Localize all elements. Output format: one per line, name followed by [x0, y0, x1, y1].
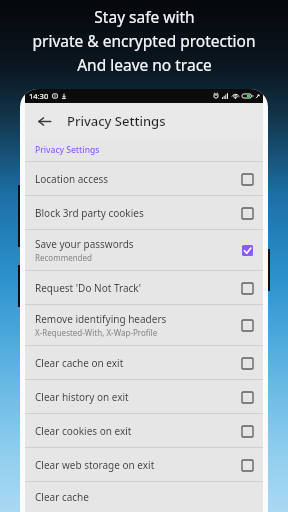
- staticText: 14:30: [29, 91, 49, 101]
- staticText: Privacy Settings: [35, 144, 100, 156]
- button[interactable]: Clear web storage on exit: [25, 448, 263, 481]
- button[interactable]: Unchecked: [240, 206, 254, 220]
- button[interactable]: Save your passwords: [25, 230, 263, 270]
- staticText: Remove identifying headers: [35, 312, 167, 326]
- button[interactable]: Unchecked: [240, 281, 254, 295]
- staticText: Save your passwords: [35, 237, 134, 251]
- staticText: private & encrypted protection: [32, 30, 256, 51]
- staticText: Clear web storage on exit: [35, 458, 155, 472]
- staticText: Clear history on exit: [35, 390, 129, 404]
- button[interactable]: Clear cache: [25, 482, 263, 512]
- button[interactable]: Unchecked: [240, 390, 254, 404]
- button[interactable]: Block 3rd party cookies: [25, 196, 263, 229]
- button[interactable]: Unchecked: [240, 356, 254, 370]
- staticText: Block 3rd party cookies: [35, 206, 144, 220]
- button[interactable]: Remove identifying headers: [25, 305, 263, 345]
- staticText: Request 'Do Not Track': [35, 281, 141, 295]
- button[interactable]: Unchecked: [240, 424, 254, 438]
- staticText: X-Requested-With, X-Wap-Profile: [35, 327, 158, 338]
- button[interactable]: Checked: [240, 243, 254, 257]
- button[interactable]: Unchecked: [240, 318, 254, 332]
- button[interactable]: Clear cookies on exit: [25, 414, 263, 447]
- button[interactable]: Clear cache on exit: [25, 346, 263, 379]
- staticText: Clear cache: [35, 490, 89, 504]
- button[interactable]: Unchecked: [240, 458, 254, 472]
- staticText: Clear cookies on exit: [35, 424, 132, 438]
- staticText: Recommended: [35, 252, 92, 263]
- button[interactable]: Location access: [25, 162, 263, 195]
- button[interactable]: Back: [29, 106, 59, 136]
- button[interactable]: Request 'Do Not Track': [25, 271, 263, 304]
- button[interactable]: Clear history on exit: [25, 380, 263, 413]
- staticText: And leave no trace: [77, 54, 212, 75]
- staticText: Privacy Settings: [67, 112, 166, 130]
- button[interactable]: Unchecked: [240, 172, 254, 186]
- staticText: Stay safe with: [94, 6, 195, 27]
- staticText: Clear cache on exit: [35, 356, 124, 370]
- staticText: Location access: [35, 172, 109, 186]
